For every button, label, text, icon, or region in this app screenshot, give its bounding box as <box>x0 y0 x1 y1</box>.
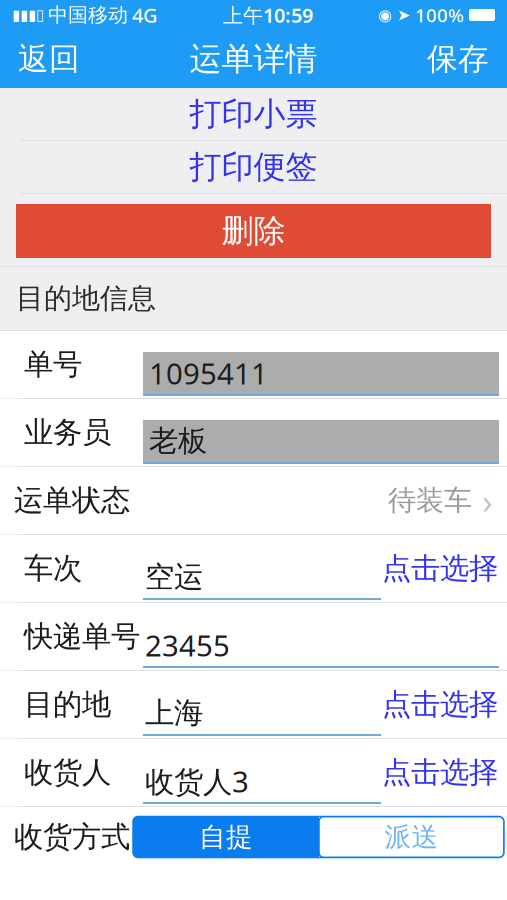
staticText: 上海 <box>145 695 203 731</box>
staticText: 中国移动 <box>48 3 128 27</box>
staticText: 自提 <box>199 821 253 853</box>
staticText: ➤ <box>397 6 410 24</box>
staticText: › <box>482 477 493 523</box>
staticText: 打印便签 <box>189 147 317 187</box>
button[interactable]: 打印小票 <box>0 88 507 140</box>
staticText: 业务员 <box>24 414 111 450</box>
staticText: 待装车 <box>388 483 472 518</box>
button[interactable]: 派送 <box>319 816 504 857</box>
staticText: 快递单号 <box>24 618 140 654</box>
staticText: 单号 <box>24 346 82 382</box>
staticText: ◉ <box>378 6 392 24</box>
button[interactable]: 返回 <box>0 30 98 88</box>
staticText: 收货人 <box>24 754 111 790</box>
staticText: 23455 <box>145 625 230 664</box>
staticText: 删除 <box>221 211 285 251</box>
staticText: 点击选择 <box>382 550 498 586</box>
staticText: 保存 <box>427 40 489 78</box>
staticText: 1095411 <box>149 353 268 392</box>
staticText: 返回 <box>18 40 80 78</box>
staticText: 运单状态 <box>14 482 130 518</box>
staticText: 车次 <box>24 550 82 586</box>
staticText: 目的地信息 <box>16 281 156 316</box>
staticText: 上午10:59 <box>223 2 313 28</box>
button[interactable]: 打印便签 <box>0 141 507 193</box>
button[interactable]: 自提 <box>133 816 319 857</box>
staticText: 点击选择 <box>382 754 498 790</box>
staticText: 100% <box>415 3 464 27</box>
staticText: 打印小票 <box>189 94 317 134</box>
staticText: 空运 <box>145 559 203 595</box>
staticText: 老板 <box>149 423 207 459</box>
staticText: 目的地 <box>24 686 111 722</box>
staticText: 收货方式 <box>14 819 130 855</box>
button[interactable]: 点击选择 <box>381 671 499 738</box>
button[interactable]: 点击选择 <box>381 535 499 602</box>
staticText: 4G <box>132 2 158 28</box>
staticText: 收货人3 <box>145 761 249 800</box>
button[interactable]: 删除 <box>0 194 507 266</box>
staticText: 运单详情 <box>189 39 317 79</box>
button[interactable]: 保存 <box>409 30 507 88</box>
staticText: ▮▮▮▯ <box>12 7 44 23</box>
staticText: 点击选择 <box>382 686 498 722</box>
button[interactable]: 点击选择 <box>381 739 499 806</box>
staticText: 派送 <box>384 821 438 853</box>
button[interactable]: 运单状态 <box>0 467 507 535</box>
